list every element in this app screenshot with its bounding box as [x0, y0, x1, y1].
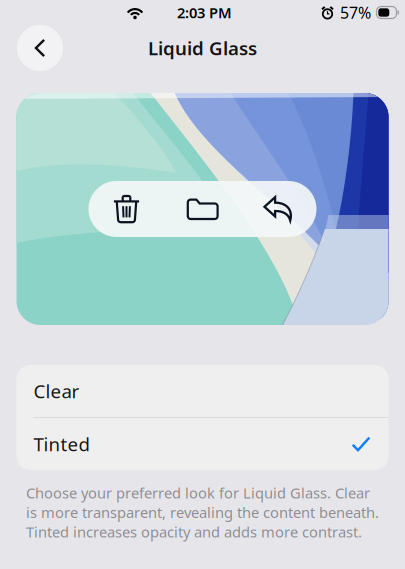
button[interactable]: Delete: [88, 181, 164, 237]
button[interactable]: Clear: [16, 365, 388, 417]
staticText: Clear: [33, 379, 79, 403]
staticText: Liquid Glass: [148, 36, 257, 60]
staticText: 57%: [340, 2, 371, 23]
button[interactable]: Move to folder: [164, 181, 240, 237]
staticText: Tinted: [33, 432, 89, 456]
staticText: 2:03 PM: [177, 3, 232, 22]
button[interactable]: Back: [17, 25, 63, 71]
button[interactable]: Tinted: [16, 418, 388, 470]
button[interactable]: Reply: [240, 181, 316, 237]
staticText: Choose your preferred look for Liquid Gl…: [26, 483, 379, 541]
